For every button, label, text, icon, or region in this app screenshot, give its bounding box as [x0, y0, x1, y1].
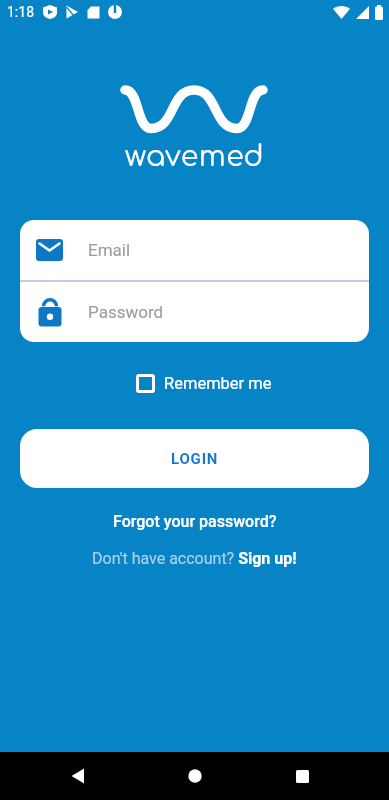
button[interactable]: [294, 768, 310, 784]
button[interactable]: Password: [20, 282, 369, 342]
button[interactable]: [187, 768, 203, 784]
button[interactable]: Remember me: [136, 374, 272, 393]
staticText: Forgot your password?: [113, 512, 277, 531]
button[interactable]: LOGIN: [20, 429, 369, 488]
staticText: Don't have account? Sign up!: [92, 549, 297, 568]
button[interactable]: Forgot your password?: [113, 512, 277, 531]
button[interactable]: Don't have account? Sign up!: [92, 549, 297, 568]
staticText: 1:18: [7, 4, 34, 20]
button[interactable]: Email: [20, 220, 369, 280]
button[interactable]: [70, 768, 86, 784]
staticText: wavemed: [125, 141, 265, 173]
staticText: LOGIN: [171, 450, 219, 468]
staticText: Email: [88, 240, 131, 260]
staticText: Remember me: [164, 374, 272, 393]
staticText: Password: [88, 302, 164, 322]
